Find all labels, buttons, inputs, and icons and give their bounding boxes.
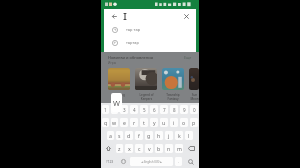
button[interactable]: e xyxy=(120,118,128,127)
staticText: o xyxy=(182,119,186,126)
staticText: Legend of Keepers xyxy=(139,93,154,101)
button[interactable]: u xyxy=(160,118,168,127)
staticText: w xyxy=(112,119,117,126)
button[interactable]: 4 xyxy=(130,105,138,114)
button[interactable]: 9 xyxy=(180,105,188,114)
button[interactable]: 7 xyxy=(160,105,168,114)
staticText: ?123 xyxy=(106,159,114,164)
staticText: 7 xyxy=(163,107,166,113)
button[interactable]: t xyxy=(140,118,148,127)
staticText: t xyxy=(143,119,145,126)
button[interactable]: 6 xyxy=(150,105,158,114)
staticText: 0 xyxy=(193,107,196,113)
button[interactable]: Cooking xyxy=(108,68,130,90)
button[interactable]: m xyxy=(175,144,183,153)
staticText: h xyxy=(157,132,161,139)
staticText: тартар xyxy=(126,40,139,45)
staticText: Township Fantasy xyxy=(166,93,180,101)
staticText: q xyxy=(104,119,108,126)
button[interactable]: Back xyxy=(110,12,118,20)
button[interactable]: Еще xyxy=(184,55,192,60)
staticText: l xyxy=(188,132,190,139)
staticText: r xyxy=(133,119,136,126)
button[interactable]: Space xyxy=(130,157,173,166)
button[interactable]: Sun Moon xyxy=(189,68,199,90)
staticText: j xyxy=(168,132,170,139)
staticText: 8 xyxy=(173,107,176,113)
button[interactable]: 0 xyxy=(190,105,198,114)
staticText: d xyxy=(127,132,131,139)
button[interactable]: a xyxy=(107,131,114,140)
button[interactable]: ?123 xyxy=(102,157,117,166)
staticText: 6 xyxy=(153,107,156,113)
button[interactable]: x xyxy=(125,144,133,153)
button[interactable]: c xyxy=(135,144,143,153)
button[interactable]: q xyxy=(102,118,109,127)
staticText: тар тар xyxy=(126,27,141,32)
staticText: m xyxy=(177,145,182,152)
staticText: a xyxy=(109,132,112,139)
staticText: b xyxy=(157,145,161,152)
button[interactable]: w xyxy=(111,118,118,127)
button[interactable]: p xyxy=(190,118,198,127)
staticText: v xyxy=(148,145,151,152)
button[interactable]: r xyxy=(130,118,138,127)
button[interactable]: k xyxy=(175,131,183,140)
staticText: x xyxy=(128,145,131,152)
staticText: 9 xyxy=(183,107,186,113)
button[interactable]: Back xyxy=(104,9,196,23)
button[interactable]: i xyxy=(170,118,178,127)
button[interactable]: f xyxy=(135,131,143,140)
button[interactable]: тар тар xyxy=(104,23,196,36)
button[interactable]: s xyxy=(116,131,123,140)
button[interactable]: 8 xyxy=(170,105,178,114)
button[interactable]: Emoji xyxy=(119,157,128,166)
button[interactable]: y xyxy=(150,118,158,127)
button[interactable]: 2 xyxy=(111,105,118,114)
staticText: . xyxy=(178,159,179,164)
staticText: e xyxy=(123,119,126,126)
button[interactable]: Search xyxy=(184,157,198,166)
staticText: z xyxy=(118,145,121,152)
button[interactable]: Shift xyxy=(101,142,115,155)
button[interactable]: g xyxy=(145,131,153,140)
staticText: n xyxy=(167,145,171,152)
staticText: 1 xyxy=(104,107,107,113)
staticText: i xyxy=(173,119,175,126)
button[interactable]: 5 xyxy=(140,105,148,114)
button[interactable]: тартар xyxy=(104,36,196,49)
staticText: ◄ English (US) ► xyxy=(141,160,163,164)
button[interactable]: d xyxy=(125,131,133,140)
staticText: 4 xyxy=(133,107,136,113)
button[interactable]: l xyxy=(185,131,193,140)
staticText: Sun Moon xyxy=(190,93,199,101)
staticText: Еще xyxy=(184,55,192,60)
staticText: Игры xyxy=(108,61,117,65)
staticText: p xyxy=(192,119,196,126)
staticText: Cooking xyxy=(113,93,125,97)
button[interactable]: Township Fantasy xyxy=(162,68,184,90)
button[interactable]: Backspace xyxy=(184,142,199,155)
button[interactable]: z xyxy=(116,144,123,153)
staticText: g xyxy=(147,132,151,139)
staticText: 3 xyxy=(123,107,126,113)
button[interactable]: Legend of Keepers xyxy=(135,68,157,90)
button[interactable]: v xyxy=(145,144,153,153)
button[interactable]: Clear xyxy=(181,11,192,22)
staticText: s xyxy=(118,132,121,139)
button[interactable]: . xyxy=(175,157,182,166)
staticText: y xyxy=(153,119,156,126)
staticText: f xyxy=(138,132,140,139)
button[interactable]: n xyxy=(165,144,173,153)
button[interactable]: o xyxy=(180,118,188,127)
button[interactable]: b xyxy=(155,144,163,153)
button[interactable]: j xyxy=(165,131,173,140)
staticText: W xyxy=(113,98,120,108)
staticText: u xyxy=(162,119,166,126)
staticText: 5 xyxy=(143,107,146,113)
button[interactable]: 1 xyxy=(102,105,109,114)
staticText: k xyxy=(178,132,181,139)
button[interactable]: 3 xyxy=(120,105,128,114)
button[interactable]: h xyxy=(155,131,163,140)
